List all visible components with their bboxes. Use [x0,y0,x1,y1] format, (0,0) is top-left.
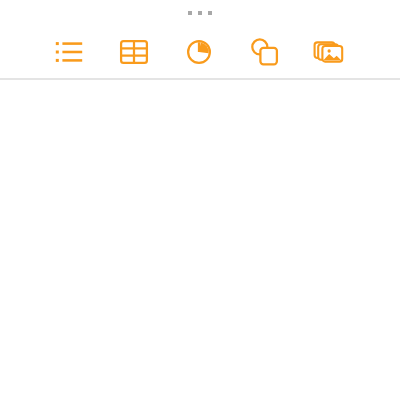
button[interactable]: More options [0,0,400,26]
button[interactable]: Chart [167,26,231,78]
button[interactable]: List [37,26,101,78]
button[interactable]: Table [102,26,166,78]
button[interactable]: Shapes [232,26,296,78]
button[interactable]: Pictures [297,26,361,78]
